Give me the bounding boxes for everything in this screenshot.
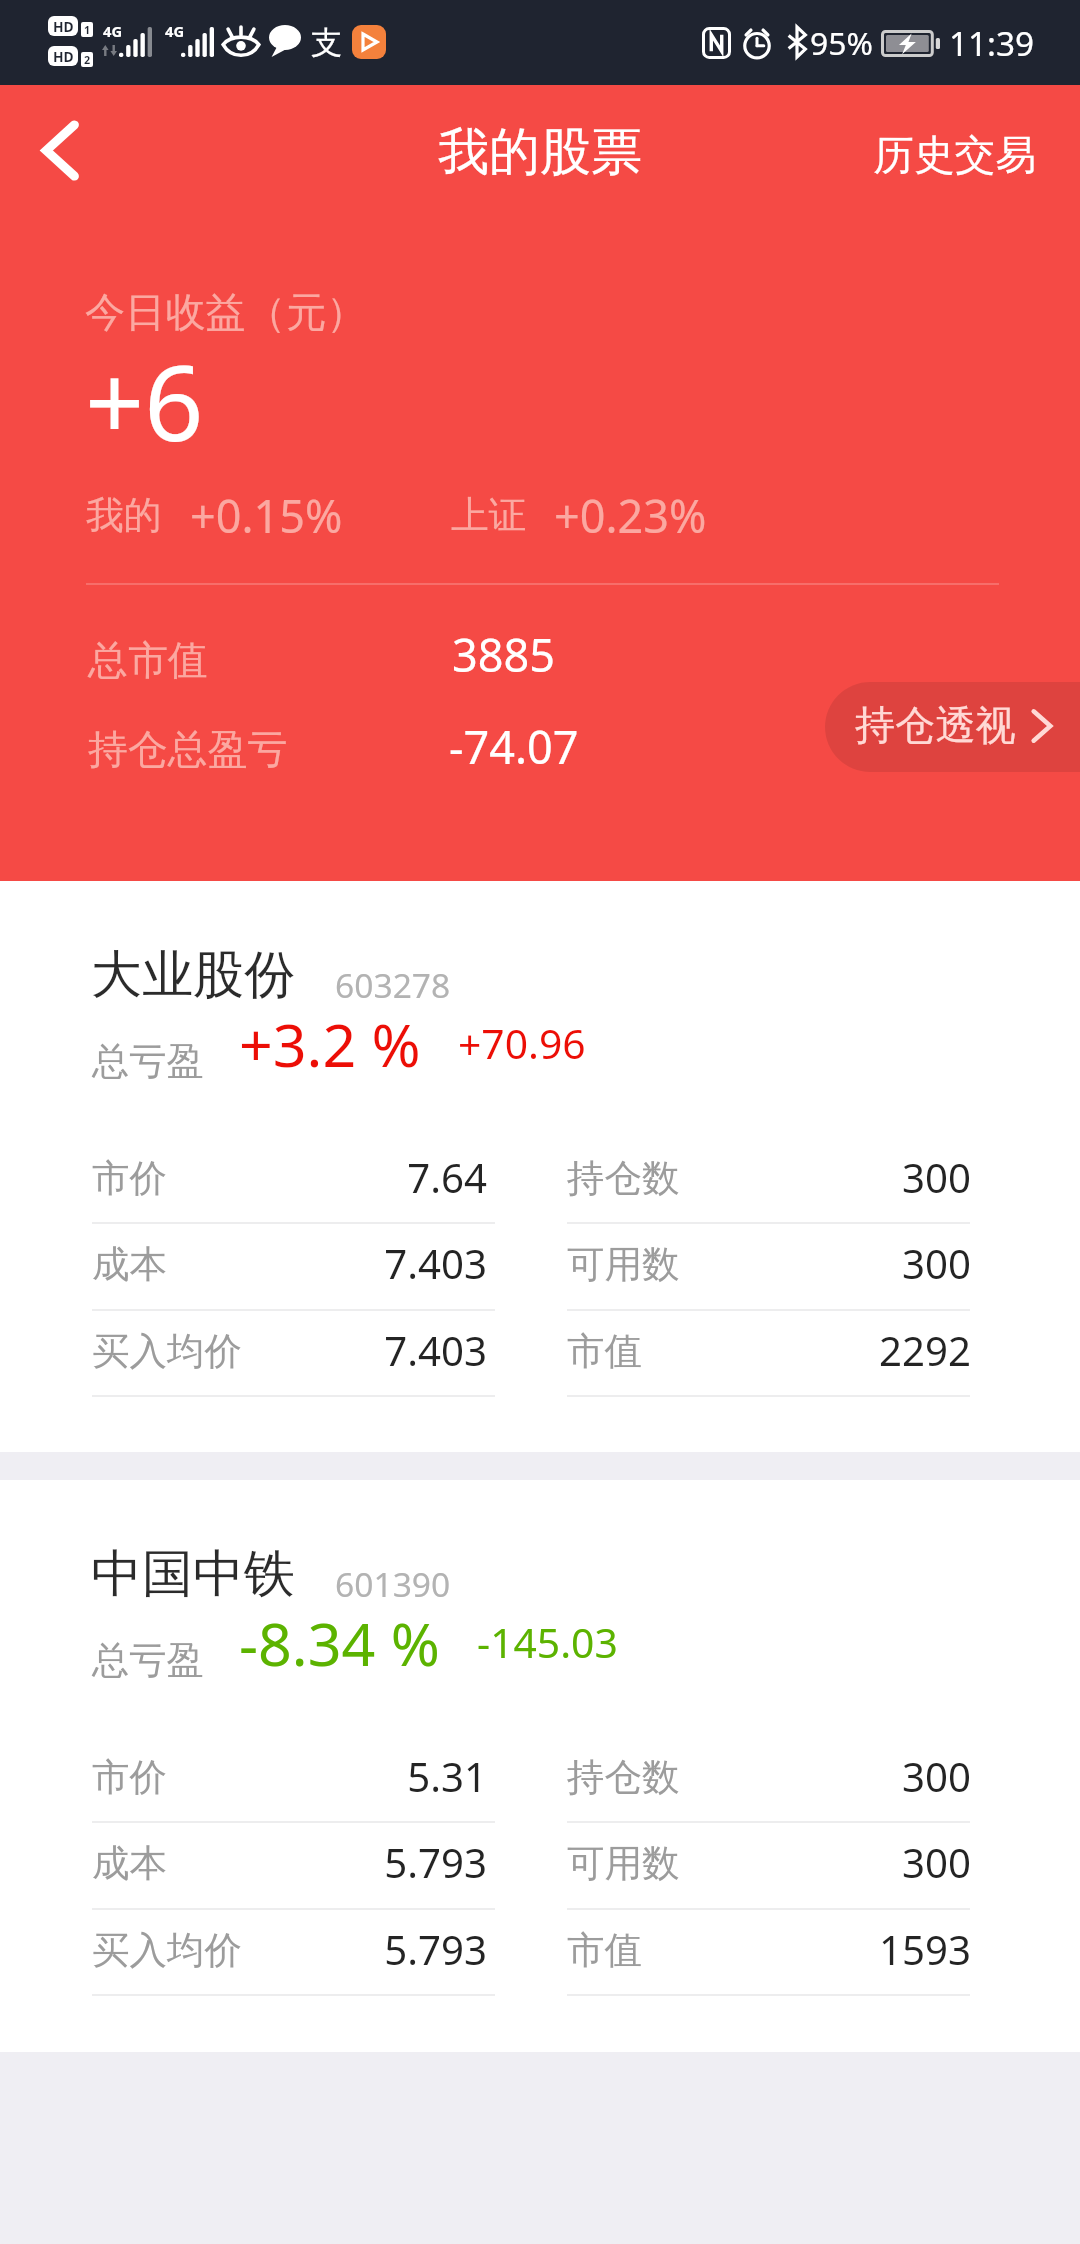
staticText: 持仓数 — [567, 1155, 680, 1202]
button[interactable]: 中国中铁 — [0, 1480, 1080, 2052]
staticText: -74.07 — [449, 716, 579, 777]
staticText: +6 — [85, 330, 204, 471]
staticText: 可用数 — [567, 1241, 680, 1288]
staticText: +70.96 — [458, 1015, 586, 1071]
button[interactable]: 大业股份 — [0, 881, 1080, 1452]
staticText: 总市值 — [88, 636, 208, 686]
staticText: 2 — [84, 52, 91, 67]
staticText: HD — [53, 47, 74, 66]
staticText: 可用数 — [567, 1840, 680, 1887]
staticText: 我的股票 — [438, 120, 642, 184]
staticText: 300 — [567, 1835, 971, 1890]
staticText: -145.03 — [477, 1614, 618, 1670]
staticText: 买入均价 — [92, 1927, 242, 1974]
staticText: 4G — [165, 21, 185, 41]
staticText: 支 — [311, 23, 343, 62]
staticText: 买入均价 — [92, 1328, 242, 1375]
staticText: HD — [53, 17, 74, 36]
staticText: -8.34 % — [239, 1603, 440, 1683]
staticText: +0.15% — [190, 485, 343, 546]
staticText: 大业股份 — [91, 943, 295, 1007]
staticText: 历史交易 — [873, 130, 1037, 181]
staticText: 总亏盈 — [92, 1637, 204, 1684]
button[interactable]: 历史交易 — [843, 102, 1067, 209]
staticText: 持仓透视 — [855, 700, 1016, 751]
staticText: 市值 — [567, 1927, 642, 1974]
staticText: +0.23% — [554, 485, 707, 546]
staticText: 7.403 — [92, 1236, 487, 1291]
staticText: 601390 — [335, 1561, 451, 1607]
staticText: 300 — [567, 1236, 971, 1291]
staticText: 603278 — [335, 962, 451, 1008]
staticText: 市值 — [567, 1328, 642, 1375]
staticText: 11:39 — [949, 20, 1035, 65]
staticText: 总亏盈 — [92, 1038, 204, 1085]
staticText: 7.64 — [92, 1150, 487, 1205]
staticText: 市价 — [92, 1754, 167, 1801]
staticText: 5.31 — [92, 1749, 487, 1804]
staticText: 300 — [567, 1150, 971, 1205]
staticText: 成本 — [92, 1241, 167, 1288]
button[interactable]: 持仓透视 — [825, 682, 1080, 772]
staticText: 5.793 — [92, 1835, 487, 1890]
staticText: 1 — [84, 22, 91, 37]
staticText: +3.2 % — [239, 1004, 421, 1084]
staticText: 5.793 — [92, 1922, 487, 1977]
button[interactable]: 返回 — [6, 92, 114, 208]
staticText: 中国中铁 — [91, 1542, 295, 1606]
staticText: 4G — [103, 21, 123, 41]
staticText: 市价 — [92, 1155, 167, 1202]
staticText: 持仓数 — [567, 1754, 680, 1801]
staticText: 今日收益（元） — [85, 287, 367, 338]
staticText: 2292 — [567, 1323, 971, 1378]
staticText: 3885 — [452, 624, 555, 685]
staticText: 1593 — [567, 1922, 971, 1977]
staticText: 7.403 — [92, 1323, 487, 1378]
staticText: 成本 — [92, 1840, 167, 1887]
staticText: 300 — [567, 1749, 971, 1804]
staticText: 我的 — [86, 492, 162, 540]
staticText: 持仓总盈亏 — [88, 725, 288, 775]
staticText: 95% — [810, 21, 873, 64]
staticText: 上证 — [451, 492, 527, 540]
